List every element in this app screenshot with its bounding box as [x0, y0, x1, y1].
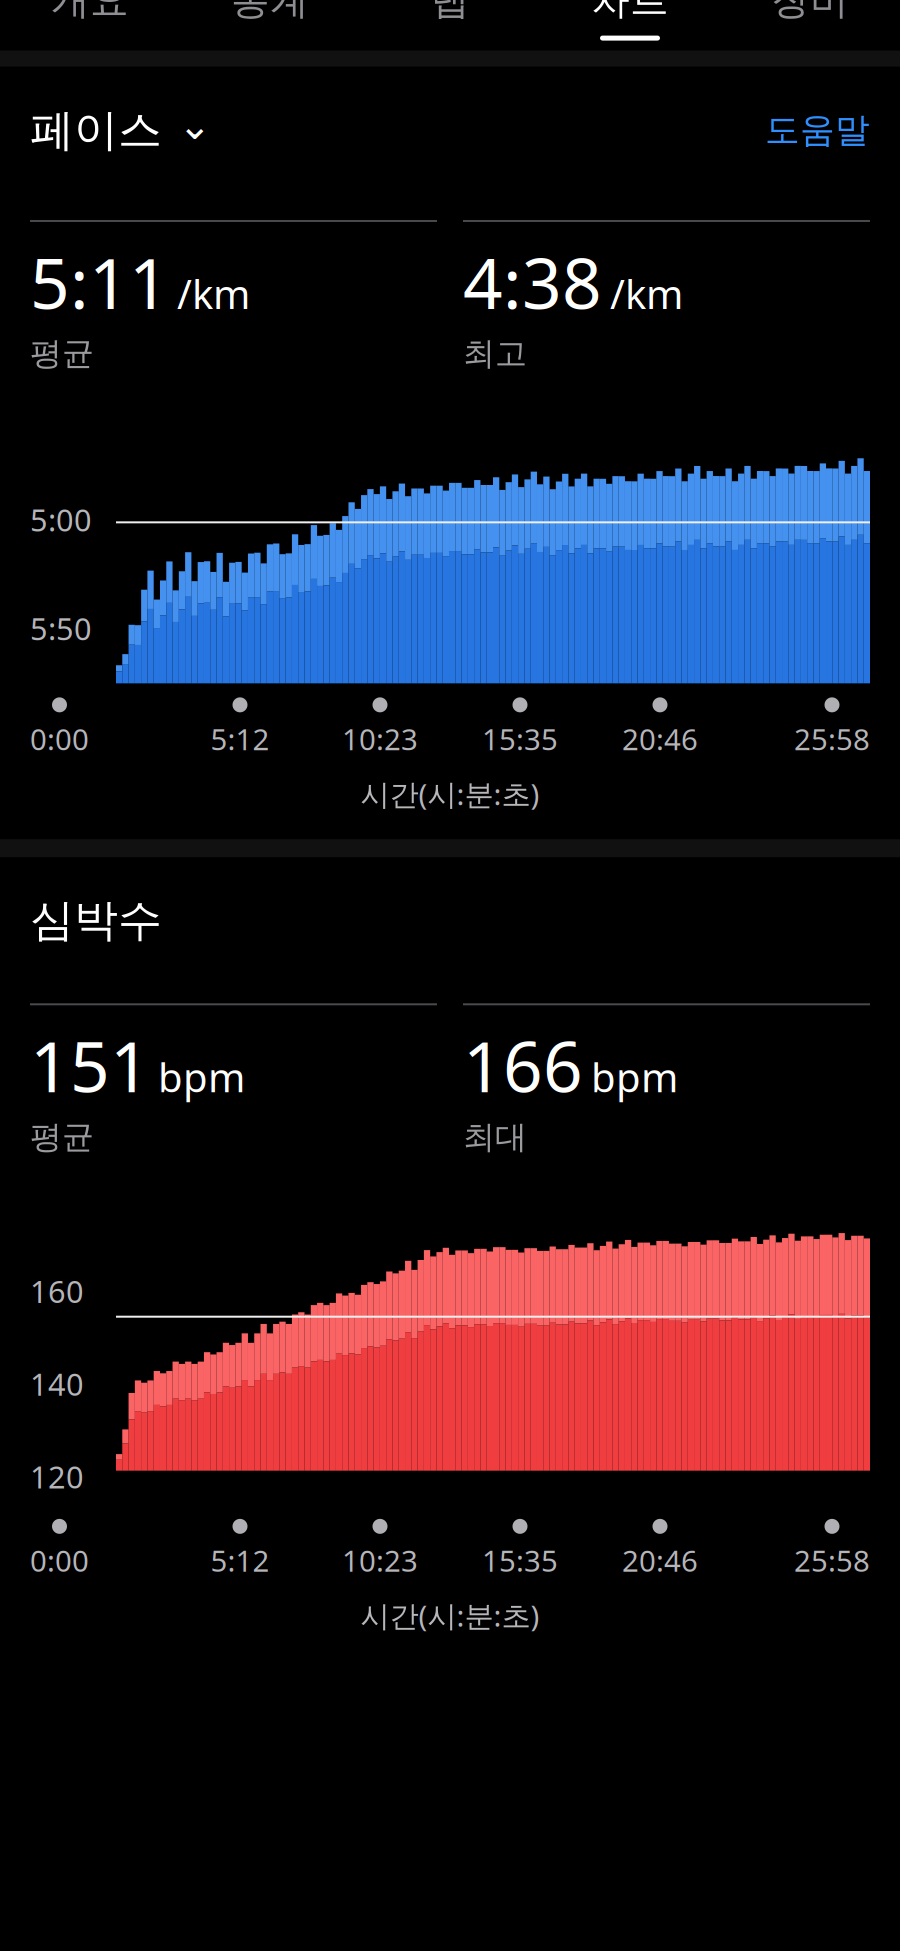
staticText: 평균 — [30, 334, 94, 373]
button[interactable]: 도움말 — [765, 109, 870, 152]
staticText: 시간(시:분:초) — [360, 774, 539, 813]
staticText: 최대 — [463, 1117, 527, 1157]
staticText: 도움말 — [765, 109, 870, 152]
button[interactable]: 장비 — [720, 0, 900, 51]
staticText: 개요 — [51, 0, 129, 24]
staticText: 시간(시:분:초) — [360, 1596, 539, 1635]
staticText: 140 — [30, 1363, 84, 1404]
staticText: /km — [610, 267, 683, 320]
staticText: 166 — [463, 1019, 583, 1111]
staticText: 장비 — [771, 0, 849, 24]
staticText: 10:23 — [342, 1541, 418, 1580]
staticText: 차트 — [591, 0, 669, 24]
staticText: 통계 — [231, 0, 309, 24]
staticText: 최고 — [463, 334, 527, 373]
staticText: 5:50 — [30, 608, 92, 649]
staticText: 5:00 — [30, 499, 92, 540]
staticText: 5:12 — [210, 719, 269, 758]
staticText: 20:46 — [622, 719, 698, 758]
staticText: 4:38 — [463, 236, 602, 328]
staticText: 15:35 — [482, 1541, 558, 1580]
staticText: 평균 — [30, 1117, 94, 1157]
staticText: 심박수 — [30, 893, 162, 947]
button[interactable]: 차트 — [540, 0, 720, 51]
staticText: /km — [177, 267, 250, 320]
staticText: 15:35 — [482, 719, 558, 758]
staticText: 25:58 — [794, 719, 870, 758]
staticText: 0:00 — [30, 1541, 89, 1580]
staticText: 120 — [30, 1456, 84, 1497]
staticText: ⌄ — [178, 103, 212, 148]
staticText: 151 — [30, 1019, 150, 1111]
button[interactable]: 페이스 — [30, 103, 212, 158]
staticText: 페이스 — [30, 103, 162, 157]
staticText: 160 — [30, 1271, 84, 1311]
button[interactable]: 개요 — [0, 0, 180, 51]
button[interactable]: 랩 — [360, 0, 540, 51]
staticText: bpm — [591, 1050, 678, 1103]
staticText: 20:46 — [622, 1541, 698, 1580]
staticText: 0:00 — [30, 719, 89, 758]
staticText: bpm — [158, 1050, 245, 1103]
staticText: 랩 — [430, 0, 469, 24]
staticText: 25:58 — [794, 1541, 870, 1580]
staticText: 5:12 — [210, 1541, 269, 1580]
button[interactable]: 통계 — [180, 0, 360, 51]
staticText: 10:23 — [342, 719, 418, 758]
staticText: 5:11 — [30, 236, 169, 328]
